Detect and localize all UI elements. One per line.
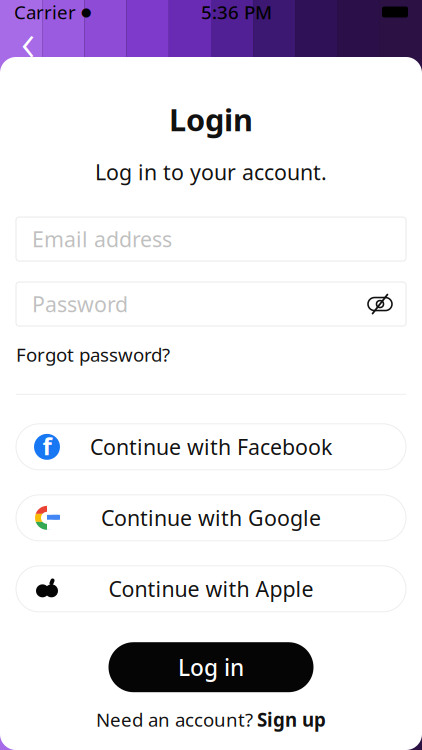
staticText: Continue with Google xyxy=(101,504,321,532)
staticText: Log in xyxy=(178,652,244,682)
button[interactable]: Show password xyxy=(363,289,397,319)
button[interactable]: Continue with Apple xyxy=(0,566,422,612)
staticText: Forgot password? xyxy=(16,342,170,367)
staticText: Carrier xyxy=(14,0,76,24)
button[interactable]: Forgot password? xyxy=(16,342,170,367)
button[interactable]: Continue with Facebook xyxy=(0,424,422,470)
button[interactable]: Continue with Google xyxy=(0,495,422,541)
staticText: Continue with Facebook xyxy=(90,433,332,461)
staticText: f xyxy=(42,430,51,462)
staticText: Password xyxy=(32,290,128,318)
staticText: 5:36 PM xyxy=(201,0,272,24)
staticText: Need an account? xyxy=(96,707,253,732)
staticText: Log in to your account. xyxy=(95,158,327,186)
staticText: Email address xyxy=(32,225,172,253)
staticText: Sign up xyxy=(257,707,326,732)
button[interactable]: Log in xyxy=(108,642,313,692)
staticText: Login xyxy=(169,99,253,140)
button[interactable]: Need an account? xyxy=(96,707,326,732)
staticText: Continue with Apple xyxy=(108,575,313,603)
staticText: ‹ xyxy=(21,5,35,76)
staticText: ● xyxy=(81,5,91,19)
button[interactable]: Back xyxy=(6,24,50,57)
